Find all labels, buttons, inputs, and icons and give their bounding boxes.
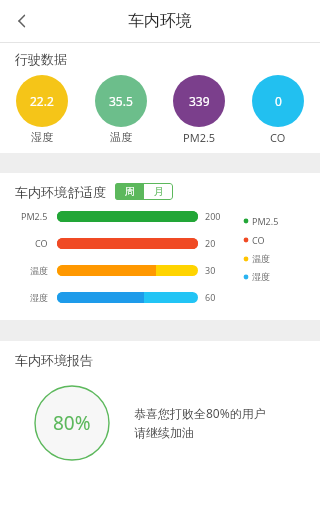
staticText: 湿度 [30, 292, 48, 303]
staticText: 温度 [110, 130, 132, 144]
staticText: 20 [205, 237, 216, 249]
button[interactable]: CO [0, 237, 238, 249]
staticText: CO [35, 237, 48, 249]
staticText: 湿度 [31, 130, 53, 144]
staticText: 80% [53, 410, 91, 436]
staticText: 温度 [252, 253, 270, 264]
staticText: 周 [125, 185, 135, 198]
staticText: 200 [205, 210, 221, 222]
staticText: CO [270, 130, 286, 145]
staticText: 行驶数据 [15, 51, 67, 67]
button[interactable]: 周 [115, 183, 144, 200]
staticText: 35.5 [109, 93, 133, 109]
staticText: 0 [275, 93, 282, 109]
staticText: 车内环境报告 [15, 352, 93, 368]
staticText: 恭喜您打败全80%的用户请继续加油 [134, 405, 274, 441]
staticText: 车内环境 [128, 11, 192, 31]
button[interactable]: PM2.5 [0, 210, 238, 222]
staticText: PM2.5 [183, 130, 216, 145]
button[interactable]: 温度 [0, 264, 238, 276]
staticText: 湿度 [252, 271, 270, 282]
button[interactable]: 月 [144, 183, 173, 200]
button[interactable]: Back [3, 2, 41, 40]
button[interactable]: 35.5 [94, 75, 148, 144]
staticText: 339 [189, 93, 210, 109]
staticText: 22.2 [30, 93, 54, 109]
staticText: 30 [205, 264, 216, 276]
staticText: PM2.5 [21, 210, 48, 222]
button[interactable]: 339 [172, 75, 226, 145]
staticText: 车内环境舒适度 [15, 184, 106, 200]
staticText: PM2.5 [252, 215, 279, 227]
staticText: 温度 [30, 265, 48, 276]
other: Week month toggle [115, 183, 173, 200]
staticText: 60 [205, 291, 216, 303]
staticText: CO [252, 234, 265, 246]
staticText: 月 [154, 185, 164, 198]
button[interactable]: 湿度 [0, 291, 238, 303]
button[interactable]: 0 [251, 75, 305, 145]
button[interactable]: 22.2 [15, 75, 69, 144]
